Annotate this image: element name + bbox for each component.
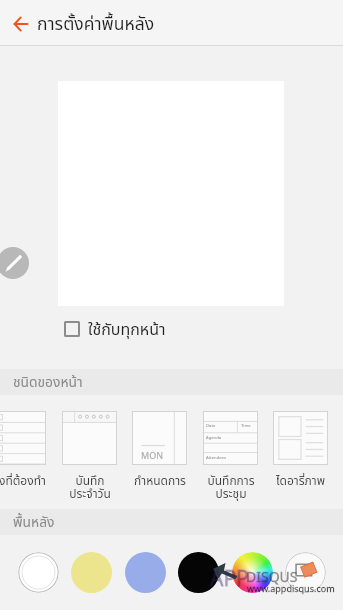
button[interactable]: Date [196,404,265,504]
staticText: การตั้งค่าพื้นหลัง [37,11,155,37]
staticText: สิ่งที่ต้องทำ [0,472,46,490]
staticText: Attendees [206,455,226,461]
staticText: บันทึก ประจำวัน [69,472,111,504]
staticText: www.appdisqus.com [247,582,335,596]
button[interactable]: White background [18,552,59,593]
button[interactable]: Choose image [285,552,326,593]
button[interactable]: Back [3,5,38,40]
button[interactable]: Edit background [0,247,29,279]
staticText: ชนิดของหน้า [13,372,83,393]
staticText: Time [241,423,251,429]
staticText: ไดอารี่ภาพ [276,472,325,490]
staticText: กำหนดการ [134,472,186,490]
button[interactable]: Blue background [125,552,166,593]
button[interactable]: ใช้กับทุกหน้า [64,317,166,341]
button[interactable]: Yellow background [71,552,112,593]
staticText: ใช้กับทุกหน้า [88,318,166,342]
staticText: MON [141,449,164,463]
staticText: พื้นหลัง [13,512,55,533]
button[interactable]: MON [125,404,194,490]
button[interactable]: สิ่งที่ต้องทำ [0,404,53,490]
button[interactable]: Custom colour [232,552,273,593]
staticText: APP [210,564,249,596]
staticText: Agenda [206,435,222,441]
staticText: DISQUS [246,567,298,588]
button[interactable]: บันทึก ประจำวัน [55,404,124,504]
button[interactable]: ไดอารี่ภาพ [266,404,335,490]
staticText: บันทึกการ ประชุม [207,472,255,504]
staticText: Date [206,423,216,429]
button[interactable]: Black background [178,552,219,593]
